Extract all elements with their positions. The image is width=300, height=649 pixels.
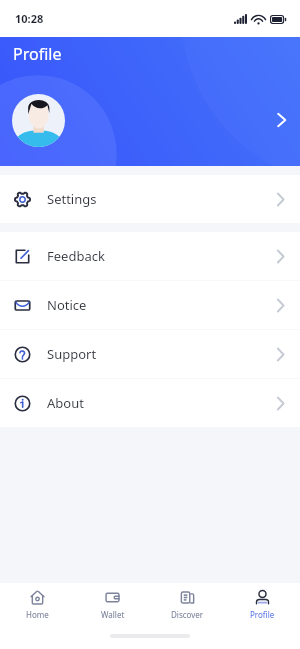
staticText: Wallet [101,609,125,620]
staticText: About [47,394,84,412]
button[interactable]: Home [0,590,75,620]
staticText: Profile [13,43,62,65]
button[interactable]: Account details [0,82,300,158]
staticText: Feedback [47,247,105,265]
button[interactable]: Profile [225,590,300,620]
staticText: Home [26,609,49,620]
staticText: Settings [47,190,97,208]
button[interactable]: Support [0,330,300,378]
staticText: Notice [47,296,87,314]
staticText: Discover [171,609,204,620]
button[interactable]: Settings [0,175,300,223]
button[interactable]: About [0,379,300,427]
button[interactable]: Notice [0,281,300,329]
staticText: Profile [250,609,275,620]
button[interactable]: Wallet [75,590,150,620]
button[interactable]: Discover [150,590,225,620]
staticText: 10:28 [15,11,44,26]
button[interactable]: Feedback [0,232,300,280]
staticText: Support [47,345,97,363]
